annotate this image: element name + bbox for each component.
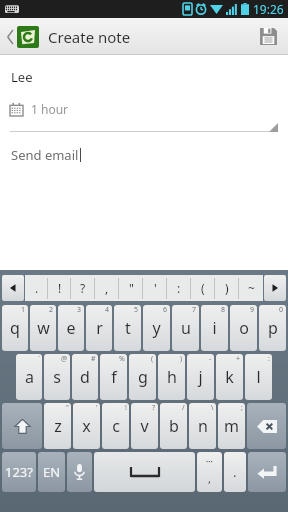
button[interactable]: Period bbox=[224, 452, 246, 492]
button[interactable]: Space bbox=[94, 452, 195, 492]
button[interactable]: b bbox=[160, 403, 187, 449]
button[interactable]: r bbox=[86, 305, 112, 351]
button[interactable]: Backspace bbox=[247, 403, 286, 449]
staticText: y bbox=[152, 317, 161, 339]
staticText: 0 bbox=[279, 305, 284, 315]
button[interactable]: ( bbox=[191, 275, 215, 301]
button[interactable]: x bbox=[73, 403, 100, 449]
staticText: o bbox=[239, 317, 249, 339]
button[interactable]: v bbox=[131, 403, 158, 449]
staticText: a bbox=[25, 366, 34, 388]
staticText: n bbox=[198, 415, 208, 437]
button[interactable]: . bbox=[25, 275, 48, 301]
button[interactable]: g bbox=[129, 354, 156, 400]
staticText: g bbox=[138, 366, 148, 388]
button[interactable]: z bbox=[44, 403, 71, 449]
button[interactable]: n bbox=[189, 403, 216, 449]
staticText: " bbox=[129, 280, 134, 296]
staticText: ( bbox=[151, 354, 154, 364]
button[interactable]: f bbox=[100, 354, 127, 400]
staticText: 5 bbox=[134, 305, 139, 315]
staticText: z bbox=[54, 415, 62, 437]
button[interactable]: EN bbox=[38, 452, 65, 492]
button[interactable]: m bbox=[218, 403, 245, 449]
staticText: f bbox=[111, 366, 117, 388]
button[interactable]: j bbox=[187, 354, 214, 400]
staticText: . bbox=[233, 463, 237, 481]
staticText: 8 bbox=[221, 305, 226, 315]
button[interactable]: d bbox=[72, 354, 98, 400]
button[interactable]: l bbox=[245, 354, 272, 400]
button[interactable]: Comma options bbox=[197, 452, 222, 492]
staticText: # bbox=[91, 354, 96, 364]
button[interactable]: t bbox=[114, 305, 141, 351]
staticText: ! bbox=[58, 280, 62, 296]
button[interactable]: Send email bbox=[0, 144, 288, 166]
staticText: 3 bbox=[77, 305, 82, 315]
staticText: : bbox=[177, 280, 181, 296]
staticText: 19:26 bbox=[253, 1, 284, 17]
button[interactable]: ) bbox=[215, 275, 239, 301]
staticText: ` bbox=[38, 354, 40, 364]
button[interactable]: , bbox=[95, 275, 119, 301]
staticText: 2 bbox=[49, 305, 54, 315]
button[interactable]: p bbox=[259, 305, 286, 351]
button[interactable]: Lee bbox=[0, 65, 288, 89]
button[interactable]: s bbox=[44, 354, 70, 400]
staticText: ? bbox=[152, 403, 156, 413]
button[interactable]: 1 hour bbox=[0, 101, 288, 132]
staticText: h bbox=[167, 366, 177, 388]
button[interactable]: Save bbox=[248, 18, 288, 55]
button[interactable]: a bbox=[16, 354, 42, 400]
button[interactable]: k bbox=[216, 354, 243, 400]
staticText: 7 bbox=[192, 305, 197, 315]
staticText: c bbox=[112, 415, 120, 437]
staticText: d bbox=[80, 366, 90, 388]
staticText: ••• bbox=[206, 458, 213, 466]
button[interactable]: ' bbox=[143, 275, 167, 301]
button[interactable]: Previous bbox=[2, 275, 24, 301]
button[interactable]: " bbox=[119, 275, 143, 301]
staticText: ) bbox=[225, 280, 229, 296]
staticText: @ bbox=[61, 354, 68, 364]
staticText: , bbox=[105, 280, 109, 296]
button[interactable]: 123? bbox=[2, 452, 36, 492]
button[interactable]: h bbox=[158, 354, 185, 400]
button[interactable]: Voice input bbox=[67, 452, 92, 492]
button[interactable]: Shift bbox=[2, 403, 42, 449]
staticText: ~ bbox=[248, 280, 255, 296]
button[interactable]: u bbox=[172, 305, 199, 351]
staticText: q bbox=[10, 317, 20, 339]
button[interactable]: ~ bbox=[239, 275, 263, 301]
button[interactable]: w bbox=[30, 305, 56, 351]
button[interactable]: Next bbox=[264, 275, 286, 301]
staticText: ( bbox=[201, 280, 205, 296]
staticText: 4 bbox=[105, 305, 110, 315]
staticText: l bbox=[256, 366, 261, 388]
staticText: % bbox=[119, 354, 125, 364]
staticText: ! bbox=[125, 403, 127, 413]
button[interactable]: c bbox=[102, 403, 129, 449]
staticText: m bbox=[224, 415, 239, 437]
button[interactable]: i bbox=[201, 305, 228, 351]
staticText: ; bbox=[241, 403, 243, 413]
button[interactable]: : bbox=[167, 275, 191, 301]
staticText: 9 bbox=[250, 305, 255, 315]
button[interactable]: q bbox=[2, 305, 28, 351]
staticText: + bbox=[236, 354, 241, 364]
button[interactable]: Up, Create note bbox=[4, 22, 134, 52]
staticText: w bbox=[37, 317, 50, 339]
button[interactable]: ? bbox=[71, 275, 95, 301]
staticText: Create note bbox=[48, 27, 131, 47]
button[interactable]: e bbox=[58, 305, 84, 351]
staticText: Send email bbox=[11, 146, 79, 164]
staticText: t bbox=[125, 317, 131, 339]
button[interactable]: ! bbox=[48, 275, 71, 301]
button[interactable]: y bbox=[143, 305, 170, 351]
staticText: ' bbox=[96, 403, 98, 413]
button[interactable]: Enter bbox=[248, 452, 286, 492]
staticText: r bbox=[96, 317, 103, 339]
staticText: \ bbox=[211, 403, 214, 413]
staticText: b bbox=[169, 415, 179, 437]
button[interactable]: o bbox=[230, 305, 257, 351]
